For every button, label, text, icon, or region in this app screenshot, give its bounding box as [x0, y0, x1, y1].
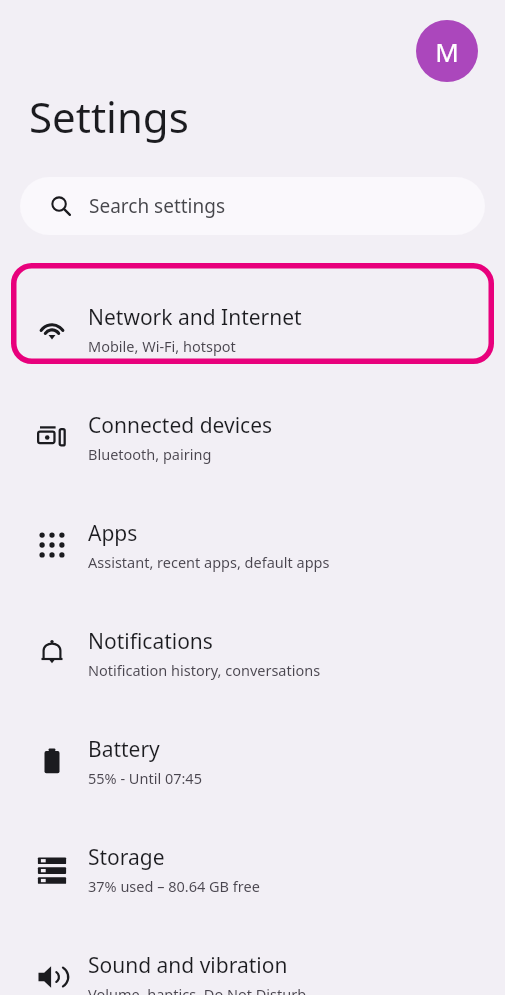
staticText: 37% used – 80.64 GB free — [88, 876, 260, 896]
button[interactable]: Sound and vibration — [16, 934, 489, 995]
staticText: 55% - Until 07:45 — [88, 768, 202, 788]
staticText: Battery — [88, 735, 160, 764]
staticText: Network and Internet — [88, 303, 302, 332]
staticText: Bluetooth, pairing — [88, 444, 212, 464]
button[interactable]: Search settings — [20, 177, 485, 235]
button[interactable]: Battery — [16, 718, 489, 804]
staticText: Storage — [88, 843, 165, 872]
button[interactable]: Network and Internet — [16, 286, 489, 372]
staticText: M — [435, 34, 459, 69]
staticText: Sound and vibration — [88, 951, 288, 980]
staticText: Mobile, Wi-Fi, hotspot — [88, 336, 236, 356]
staticText: Volume, haptics, Do Not Disturb — [88, 984, 307, 995]
button[interactable]: Connected devices — [16, 394, 489, 480]
button[interactable]: Apps — [16, 502, 489, 588]
staticText: Notification history, conversations — [88, 660, 321, 680]
button[interactable]: Storage — [16, 826, 489, 912]
staticText: Settings — [29, 88, 189, 145]
staticText: Assistant, recent apps, default apps — [88, 552, 330, 572]
staticText: Apps — [88, 519, 138, 548]
staticText: Connected devices — [88, 411, 273, 440]
staticText: Notifications — [88, 627, 213, 656]
button[interactable]: Account — [416, 20, 478, 82]
staticText: Search settings — [89, 193, 226, 219]
button[interactable]: Notifications — [16, 610, 489, 696]
